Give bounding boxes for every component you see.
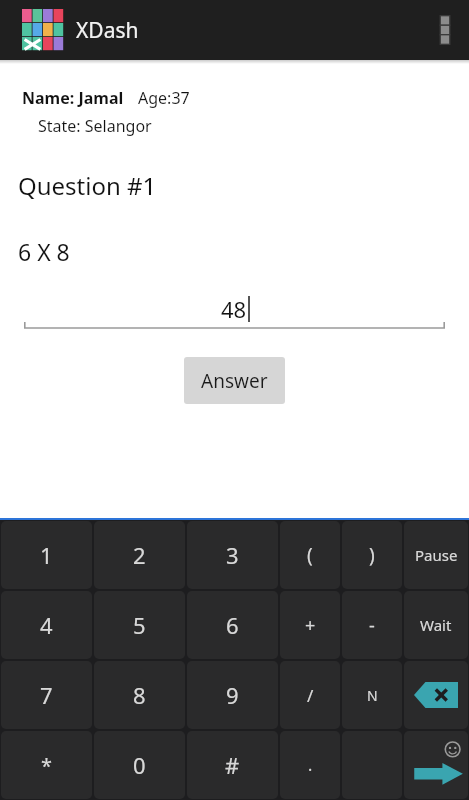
staticText: 1 (40, 540, 53, 570)
staticText: Age:37 (138, 87, 190, 109)
button[interactable]: Enter (404, 731, 468, 799)
staticText: ) (369, 542, 375, 568)
button[interactable]: Pause (404, 521, 468, 589)
staticText: Pause (415, 545, 458, 565)
button[interactable]: More options (421, 0, 469, 60)
staticText: Wait (420, 615, 452, 635)
staticText: 7 (40, 680, 53, 710)
button[interactable]: / (280, 661, 340, 729)
button[interactable]: . (280, 731, 340, 799)
staticText: 5 (133, 610, 146, 640)
staticText: 0 (133, 750, 146, 780)
button[interactable]: # (187, 731, 278, 799)
staticText: Name: Jamal (22, 87, 124, 109)
staticText: - (369, 613, 375, 638)
staticText: * (41, 752, 53, 779)
button[interactable]: 1 (1, 521, 92, 589)
button[interactable]: 6 (187, 591, 278, 659)
button[interactable]: 9 (187, 661, 278, 729)
button[interactable]: 3 (187, 521, 278, 589)
button[interactable]: Answer (184, 357, 285, 404)
button[interactable]: Backspace (404, 661, 468, 729)
staticText: Question #1 (18, 169, 157, 202)
button[interactable]: XDash (22, 9, 64, 51)
button[interactable]: - (342, 591, 402, 659)
staticText: 3 (226, 540, 239, 570)
button[interactable]: + (280, 591, 340, 659)
button[interactable]: 7 (1, 661, 92, 729)
button[interactable]: * (1, 731, 92, 799)
staticText: 8 (133, 680, 146, 710)
staticText: . (308, 754, 313, 776)
staticText: 2 (133, 540, 146, 570)
button[interactable]: 5 (94, 591, 185, 659)
button[interactable]: 2 (94, 521, 185, 589)
button[interactable]: ( (280, 521, 340, 589)
button[interactable]: Wait (404, 591, 468, 659)
staticText: State: Selangor (38, 115, 152, 137)
staticText: N (367, 686, 378, 705)
staticText: 6 (226, 610, 239, 640)
staticText: / (307, 684, 314, 707)
staticText: # (225, 750, 240, 780)
staticText: Answer (201, 368, 268, 394)
staticText: 9 (226, 680, 239, 710)
button[interactable]: N (342, 661, 402, 729)
button[interactable]: 4 (1, 591, 92, 659)
staticText: + (305, 613, 316, 638)
staticText: ( (307, 542, 313, 568)
button[interactable]: 48 (24, 289, 445, 329)
button[interactable]: ) (342, 521, 402, 589)
staticText: 4 (40, 610, 53, 640)
staticText: XDash (76, 16, 139, 45)
button[interactable]: 0 (94, 731, 185, 799)
button[interactable]: 8 (94, 661, 185, 729)
staticText: 48 (221, 294, 247, 324)
staticText: 6 X 8 (18, 236, 70, 267)
